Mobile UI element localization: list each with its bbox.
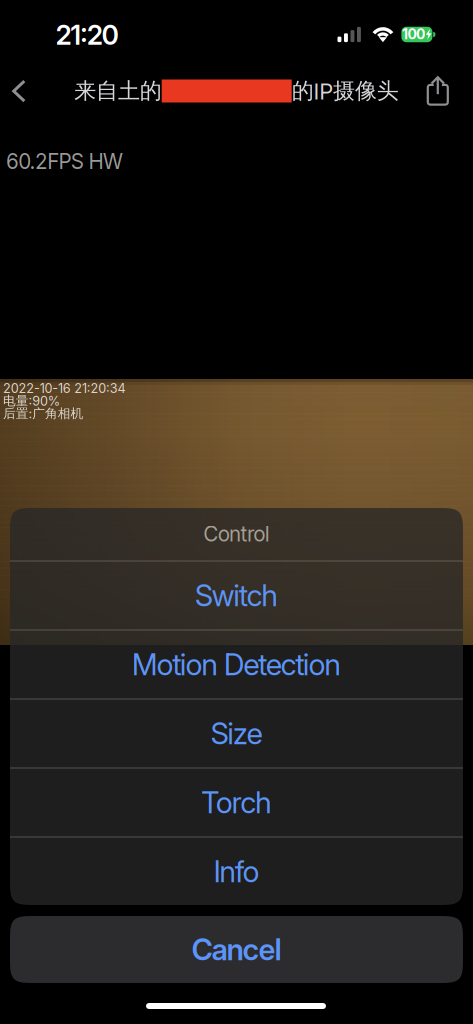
staticText: 2022-10-16 21:20:34 bbox=[3, 381, 125, 396]
button[interactable]: Share bbox=[415, 63, 461, 119]
staticText: Torch bbox=[201, 785, 272, 820]
staticText: 电量:90% bbox=[3, 393, 60, 409]
staticText: Switch bbox=[195, 578, 278, 613]
staticText: Control bbox=[203, 521, 270, 546]
staticText: Info bbox=[213, 854, 259, 889]
button[interactable]: Info bbox=[10, 837, 463, 905]
button[interactable]: Cancel bbox=[10, 916, 463, 983]
button[interactable]: Back bbox=[0, 63, 38, 119]
button[interactable]: Switch bbox=[10, 561, 463, 629]
staticText: 的IP摄像头 bbox=[292, 77, 399, 105]
staticText: Size bbox=[210, 716, 262, 751]
staticText: 100 bbox=[402, 26, 425, 43]
button[interactable]: Size bbox=[10, 699, 463, 767]
staticText: 来自土的 bbox=[74, 77, 162, 105]
button[interactable]: Torch bbox=[10, 768, 463, 836]
staticText: Motion Detection bbox=[132, 647, 341, 682]
staticText: 后置:广角相机 bbox=[3, 405, 83, 421]
staticText: Cancel bbox=[191, 932, 281, 967]
button[interactable]: Motion Detection bbox=[10, 630, 463, 698]
staticText: 60.2FPS HW bbox=[6, 149, 123, 174]
staticText: 21:20 bbox=[56, 19, 118, 51]
